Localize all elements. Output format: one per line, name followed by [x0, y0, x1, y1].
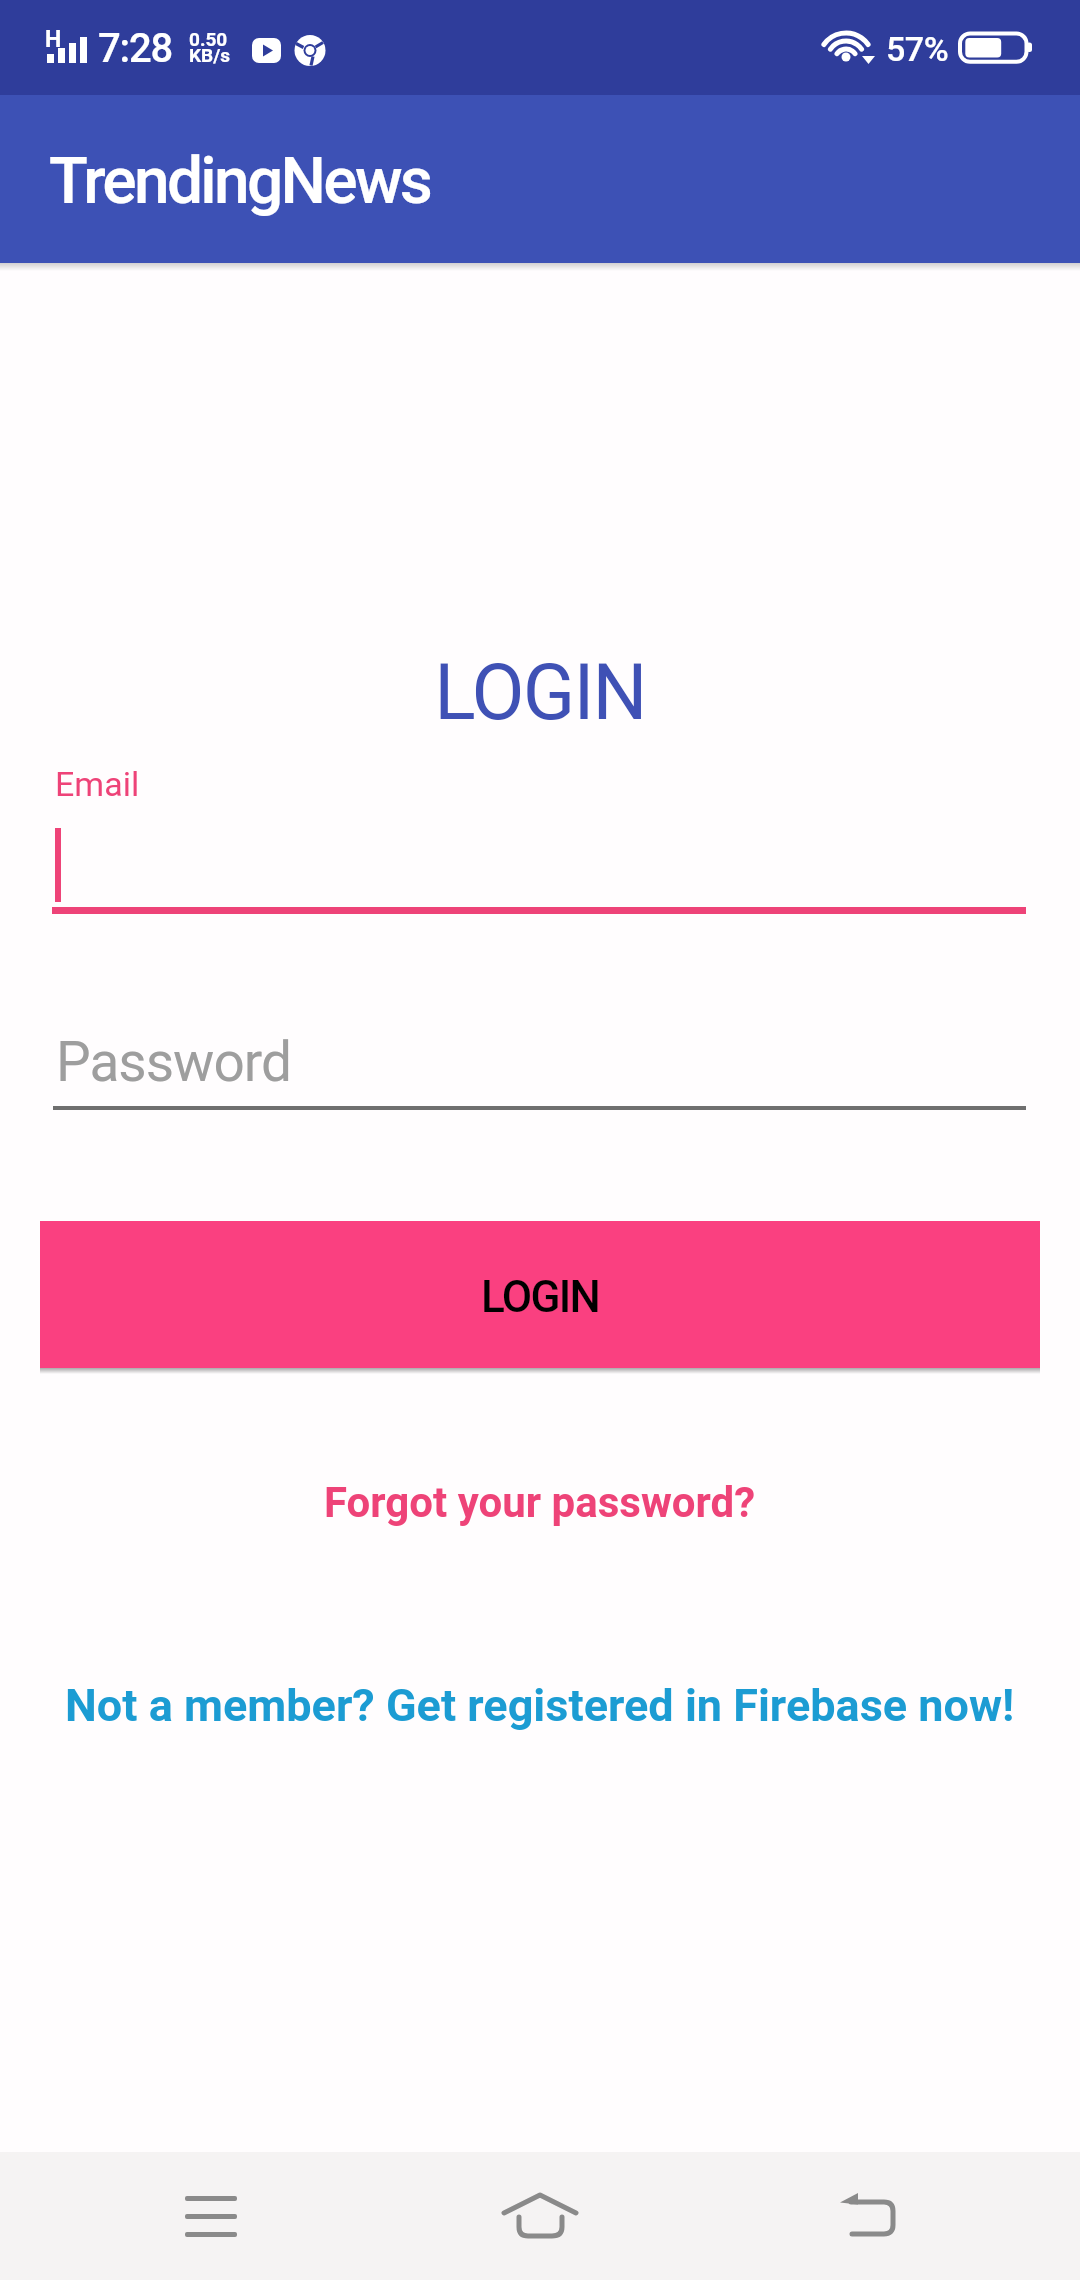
- staticText: Password: [56, 1030, 291, 1094]
- staticText: LOGIN: [481, 1271, 599, 1323]
- button[interactable]: [163, 2168, 259, 2264]
- staticText: TrendingNews: [49, 144, 431, 219]
- staticText: 7:28: [98, 25, 173, 72]
- button[interactable]: [492, 2168, 588, 2264]
- staticText: 0.50: [189, 28, 228, 50]
- button[interactable]: Not a member? Get registered in Firebase…: [65, 1679, 1015, 1732]
- staticText: Not a member? Get registered in Firebase…: [65, 1679, 1015, 1732]
- button[interactable]: Forgot your password?: [324, 1478, 756, 1527]
- staticText: KB/s: [189, 44, 231, 66]
- button[interactable]: Password: [53, 1018, 1026, 1110]
- button[interactable]: LOGIN: [40, 1221, 1040, 1368]
- staticText: Email: [55, 764, 140, 804]
- button[interactable]: [821, 2168, 917, 2264]
- staticText: 57%: [886, 29, 949, 69]
- staticText: H: [45, 26, 62, 53]
- button[interactable]: Email: [52, 764, 1026, 914]
- staticText: LOGIN: [0, 648, 1080, 738]
- staticText: Forgot your password?: [324, 1478, 756, 1527]
